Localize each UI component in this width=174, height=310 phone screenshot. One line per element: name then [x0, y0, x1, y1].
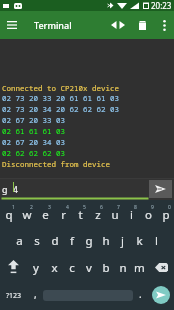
staticText: 9: [151, 204, 154, 211]
button[interactable]: l: [148, 227, 165, 253]
button[interactable]: 9: [140, 201, 157, 227]
staticText: 8: [134, 204, 137, 211]
staticText: 6: [100, 204, 103, 211]
button[interactable]: 5: [72, 201, 89, 227]
button[interactable]: Navigation menu: [0, 13, 24, 37]
staticText: .: [139, 287, 142, 301]
button[interactable]: g: [80, 227, 97, 253]
button[interactable]: 1: [0, 201, 18, 227]
staticText: f: [70, 233, 74, 249]
button[interactable]: Shift: [0, 254, 27, 280]
staticText: Connected to CP210x device 02 73 20 33 2…: [2, 83, 119, 170]
button[interactable]: n: [114, 254, 131, 280]
staticText: g 4: [2, 183, 19, 195]
button[interactable]: h: [97, 227, 114, 253]
staticText: 0: [168, 204, 171, 211]
button[interactable]: 4: [54, 201, 72, 227]
staticText: i: [130, 207, 133, 223]
button[interactable]: v: [80, 254, 97, 280]
staticText: d: [51, 233, 59, 249]
button[interactable]: Backspace: [148, 254, 174, 280]
button[interactable]: Connect: [106, 13, 130, 37]
staticText: x: [51, 260, 58, 276]
button[interactable]: .: [133, 282, 148, 308]
staticText: a: [16, 233, 23, 249]
button[interactable]: y: [27, 254, 45, 280]
staticText: w: [22, 207, 32, 223]
button[interactable]: ?123: [0, 282, 28, 308]
staticText: v: [86, 260, 92, 276]
staticText: k: [136, 233, 143, 249]
staticText: e: [42, 207, 49, 223]
staticText: ?123: [6, 291, 22, 301]
staticText: q: [5, 207, 13, 223]
staticText: b: [102, 260, 110, 276]
staticText: o: [145, 207, 152, 223]
staticText: t: [78, 207, 83, 223]
staticText: 1: [12, 204, 15, 211]
staticText: r: [61, 207, 66, 223]
staticText: Terminal: [34, 19, 72, 31]
button[interactable]: 0: [157, 201, 174, 227]
button[interactable]: ,: [28, 282, 43, 308]
button[interactable]: 8: [123, 201, 140, 227]
button[interactable]: More options: [154, 15, 174, 35]
button[interactable]: b: [97, 254, 114, 280]
button[interactable]: s: [28, 227, 46, 253]
staticText: h: [102, 233, 110, 249]
button[interactable]: g 4: [0, 178, 149, 200]
staticText: p: [162, 207, 170, 223]
button[interactable]: d: [46, 227, 63, 253]
staticText: 2: [30, 204, 33, 211]
button[interactable]: f: [63, 227, 80, 253]
button[interactable]: c: [63, 254, 80, 280]
staticText: j: [121, 233, 124, 249]
button[interactable]: Clear: [130, 13, 154, 37]
button[interactable]: k: [131, 227, 148, 253]
staticText: 3: [48, 204, 51, 211]
staticText: n: [119, 260, 127, 276]
button[interactable]: Send: [149, 180, 172, 198]
staticText: 4: [66, 204, 69, 211]
button[interactable]: m: [131, 254, 148, 280]
button[interactable]: 6: [89, 201, 106, 227]
staticText: m: [134, 260, 145, 276]
button[interactable]: 2: [18, 201, 36, 227]
button[interactable]: 3: [36, 201, 54, 227]
staticText: y: [33, 260, 39, 276]
staticText: g: [85, 233, 93, 249]
button[interactable]: a: [10, 227, 28, 253]
staticText: u: [111, 207, 119, 223]
staticText: ,: [34, 287, 37, 301]
button[interactable]: 7: [106, 201, 123, 227]
staticText: 20:23: [151, 0, 172, 11]
button[interactable]: x: [45, 254, 63, 280]
staticText: 7: [117, 204, 120, 211]
button[interactable]: Enter: [152, 286, 170, 304]
staticText: z: [95, 207, 101, 223]
staticText: c: [69, 260, 75, 276]
staticText: l: [155, 233, 158, 249]
button[interactable]: j: [114, 227, 131, 253]
staticText: 5: [83, 204, 86, 211]
staticText: s: [34, 233, 40, 249]
